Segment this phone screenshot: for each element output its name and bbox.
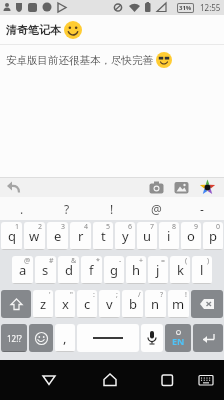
button[interactable]: ? [145, 290, 166, 318]
button[interactable]: EN [165, 324, 191, 352]
button[interactable]: 12!? [1, 324, 27, 352]
staticText: i [167, 227, 171, 245]
staticText: " [70, 290, 73, 300]
staticText: ! [110, 201, 114, 217]
staticText: p [209, 227, 217, 245]
staticText: ( [185, 256, 188, 266]
button[interactable] [29, 324, 53, 352]
button[interactable] [1, 290, 31, 318]
button[interactable] [40, 371, 58, 389]
button[interactable] [199, 179, 216, 196]
staticText: - [200, 201, 204, 217]
button[interactable]: . [0, 197, 44, 220]
button[interactable]: ( [170, 256, 190, 284]
button[interactable]: - [104, 256, 124, 284]
button[interactable]: 3 [47, 222, 68, 250]
staticText: 12!? [7, 333, 22, 344]
staticText: r [78, 227, 84, 245]
staticText: u [143, 227, 152, 245]
button[interactable]: = [148, 256, 168, 284]
button[interactable]: : [77, 290, 97, 318]
staticText: 安卓版目前还很基本，尽快完善 [6, 54, 153, 67]
button[interactable]: 0 [203, 222, 223, 250]
button[interactable]: & [58, 256, 79, 284]
button[interactable] [149, 180, 164, 195]
button[interactable] [141, 324, 163, 352]
staticText: n [151, 295, 160, 313]
staticText: / [138, 290, 141, 300]
button[interactable] [6, 180, 20, 194]
staticText: c [84, 295, 91, 313]
staticText: 8 [172, 222, 177, 232]
staticText: ' [49, 290, 51, 300]
staticText: b [129, 295, 137, 313]
button[interactable]: / [122, 290, 143, 318]
button[interactable]: 5 [93, 222, 113, 250]
button[interactable]: ! [89, 197, 134, 220]
button[interactable]: 6 [115, 222, 135, 250]
staticText: l [200, 261, 204, 279]
staticText: . [20, 201, 24, 217]
button[interactable] [101, 371, 119, 389]
staticText: z [40, 295, 47, 313]
button[interactable]: 9 [181, 222, 201, 250]
button[interactable]: ) [192, 256, 212, 284]
staticText: EN [172, 335, 185, 347]
button[interactable] [193, 324, 223, 352]
staticText: 4 [84, 222, 89, 232]
staticText: m [172, 295, 185, 313]
staticText: o [187, 227, 195, 245]
staticText: t [101, 227, 106, 245]
staticText: 5 [106, 222, 111, 232]
staticText: j [156, 261, 160, 279]
staticText: g [110, 261, 118, 279]
button[interactable]: ? [44, 197, 89, 220]
button[interactable]: * [81, 256, 102, 284]
button[interactable]: 2 [24, 222, 45, 250]
button[interactable]: + [126, 256, 146, 284]
button[interactable]: - [179, 197, 224, 220]
button[interactable]: 4 [70, 222, 91, 250]
button[interactable]: 7 [137, 222, 157, 250]
staticText: h [132, 261, 141, 279]
staticText: @ [151, 201, 162, 217]
button[interactable]: @ [12, 256, 33, 284]
button[interactable] [158, 371, 176, 389]
staticText: w [29, 227, 40, 245]
staticText: 3 [61, 222, 66, 232]
staticText: 31% [179, 4, 192, 12]
button[interactable]: @ [134, 197, 179, 220]
staticText: = [161, 256, 166, 266]
staticText: ? [64, 201, 70, 217]
staticText: v [106, 295, 113, 313]
staticText: - [119, 256, 122, 266]
staticText: 7 [150, 222, 155, 232]
button[interactable]: 1 [1, 222, 22, 250]
button[interactable]: ! [168, 290, 189, 318]
button[interactable] [77, 324, 139, 352]
staticText: 12:55 [200, 2, 221, 13]
button[interactable]: " [55, 290, 75, 318]
button[interactable]: 8 [159, 222, 179, 250]
staticText: q [8, 227, 16, 245]
button[interactable] [191, 290, 223, 318]
staticText: ! [185, 290, 187, 300]
button[interactable] [198, 372, 214, 388]
staticText: @ [24, 256, 31, 266]
staticText: d [65, 261, 73, 279]
button[interactable]: ' [33, 290, 53, 318]
staticText: * [96, 256, 100, 266]
button[interactable]: , [55, 324, 75, 352]
staticText: x [62, 295, 69, 313]
staticText: 0 [216, 222, 221, 232]
staticText: + [139, 256, 144, 266]
staticText: ; [116, 290, 118, 300]
staticText: k [177, 261, 184, 279]
button[interactable] [174, 180, 189, 195]
staticText: y [122, 227, 129, 245]
button[interactable]: # [35, 256, 56, 284]
staticText: 6 [128, 222, 133, 232]
staticText: & [71, 256, 77, 266]
button[interactable]: ; [99, 290, 120, 318]
staticText: e [54, 227, 62, 245]
